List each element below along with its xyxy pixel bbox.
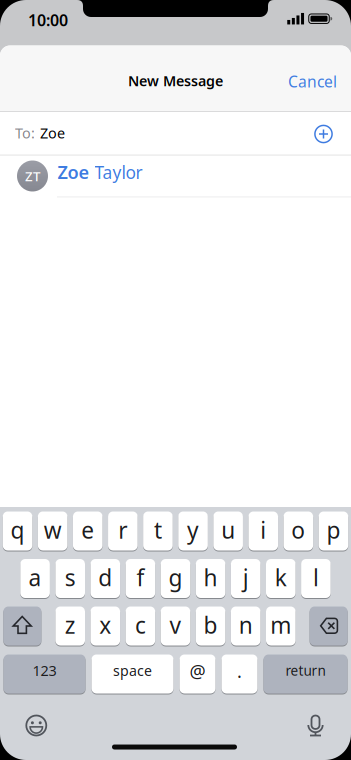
button[interactable]: t	[143, 511, 173, 551]
button[interactable]: r	[108, 511, 138, 551]
button[interactable]: m	[266, 606, 296, 646]
staticText: i	[260, 515, 266, 545]
staticText: .	[237, 659, 242, 683]
button[interactable]: g	[161, 558, 190, 598]
button[interactable]: n	[231, 606, 260, 646]
staticText: return	[285, 661, 325, 680]
staticText: w	[44, 515, 62, 545]
staticText: a	[29, 562, 42, 593]
button[interactable]: f	[126, 558, 155, 598]
staticText: space	[113, 661, 152, 680]
staticText: t	[154, 515, 162, 545]
button[interactable]: return	[263, 654, 347, 694]
button[interactable]: x	[90, 606, 120, 646]
button[interactable]: l	[301, 558, 331, 598]
staticText: c	[135, 610, 146, 640]
button[interactable]: @	[179, 654, 215, 694]
button[interactable]: i	[248, 511, 278, 551]
staticText: j	[243, 562, 249, 593]
staticText: Zoe Taylor	[57, 160, 142, 184]
staticText: @	[189, 659, 205, 683]
button[interactable]: ZT	[17, 155, 351, 197]
staticText: n	[239, 610, 253, 640]
button[interactable]: d	[90, 558, 120, 598]
staticText: 123	[32, 661, 56, 680]
button[interactable]: w	[38, 511, 67, 551]
staticText: b	[204, 610, 218, 640]
staticText: p	[326, 515, 340, 545]
button[interactable]: Shift	[3, 606, 41, 646]
staticText: z	[65, 610, 76, 640]
staticText: v	[169, 610, 181, 640]
staticText: k	[275, 562, 287, 593]
button[interactable]: h	[196, 558, 225, 598]
staticText: ZT	[25, 167, 40, 185]
staticText: s	[65, 562, 76, 593]
button[interactable]: o	[284, 511, 313, 551]
button[interactable]: space	[91, 654, 173, 694]
button[interactable]: Dictation	[304, 714, 326, 736]
staticText: e	[81, 515, 94, 545]
button[interactable]: .	[221, 654, 257, 694]
button[interactable]: 123	[3, 654, 85, 694]
button[interactable]: y	[178, 511, 208, 551]
staticText: g	[168, 562, 182, 593]
staticText: y	[187, 515, 199, 545]
button[interactable]: b	[196, 606, 225, 646]
button[interactable]: Emoji	[25, 714, 47, 736]
button[interactable]: q	[3, 511, 32, 551]
button[interactable]: z	[55, 606, 85, 646]
button[interactable]: v	[161, 606, 190, 646]
button[interactable]: s	[55, 558, 85, 598]
button[interactable]: j	[231, 558, 260, 598]
button[interactable]: Cancel	[288, 71, 337, 92]
staticText: h	[204, 562, 218, 593]
staticText: To:	[15, 123, 35, 143]
button[interactable]: e	[73, 511, 103, 551]
staticText: r	[118, 515, 127, 545]
staticText: Cancel	[288, 71, 337, 92]
staticText: f	[136, 562, 144, 593]
staticText: New Message	[128, 71, 223, 90]
button[interactable]: Add Contact	[313, 124, 333, 144]
button[interactable]: Delete	[310, 606, 348, 646]
staticText: d	[98, 562, 112, 593]
staticText: l	[313, 562, 319, 593]
staticText: u	[221, 515, 235, 545]
button[interactable]: u	[213, 511, 243, 551]
staticText: Zoe	[40, 123, 65, 143]
staticText: q	[11, 515, 25, 545]
staticText: m	[270, 610, 291, 640]
button[interactable]: c	[126, 606, 155, 646]
staticText: x	[99, 610, 111, 640]
button[interactable]: p	[319, 511, 348, 551]
button[interactable]: k	[266, 558, 296, 598]
button[interactable]: a	[20, 558, 50, 598]
staticText: 10:00	[28, 9, 68, 31]
staticText: o	[291, 515, 305, 545]
